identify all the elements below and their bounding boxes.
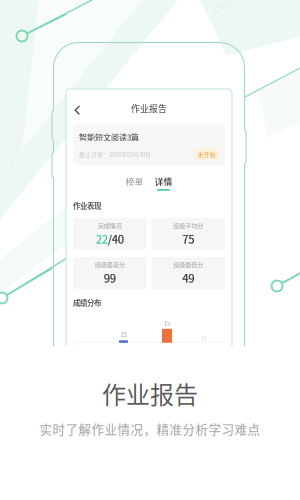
staticText: 智能短文阅读3篇 xyxy=(79,131,139,143)
staticText: 15 xyxy=(164,319,170,327)
staticText: 99 xyxy=(104,270,116,286)
staticText: 班级平均分 xyxy=(173,221,203,230)
staticText: 完成情况 xyxy=(98,221,122,230)
button[interactable]: 榜单 xyxy=(123,175,145,193)
staticText: 成绩分布 xyxy=(73,297,101,308)
button[interactable]: 详情 xyxy=(152,175,174,193)
staticText: 详情 xyxy=(154,175,172,188)
staticText: 22 xyxy=(96,231,108,247)
button[interactable]: 返回 xyxy=(71,102,84,118)
staticText: 作业报告 xyxy=(131,102,167,114)
staticText: 13 xyxy=(120,330,126,339)
staticText: 49 xyxy=(182,270,194,286)
staticText: 作业报告 xyxy=(102,376,198,411)
staticText: 75 xyxy=(182,231,194,247)
staticText: 截止日期：2020年03月30日 xyxy=(79,150,151,158)
staticText: 作业表现 xyxy=(73,200,101,211)
staticText: 10 xyxy=(201,335,207,342)
staticText: 未开始 xyxy=(197,150,215,159)
staticText: 实时了解作业情况，精准分析学习难点 xyxy=(39,420,260,438)
staticText: 班级最低分 xyxy=(173,260,203,269)
staticText: 榜单 xyxy=(125,175,143,188)
staticText: 班级最高分 xyxy=(95,260,125,269)
staticText: /40 xyxy=(108,231,124,247)
